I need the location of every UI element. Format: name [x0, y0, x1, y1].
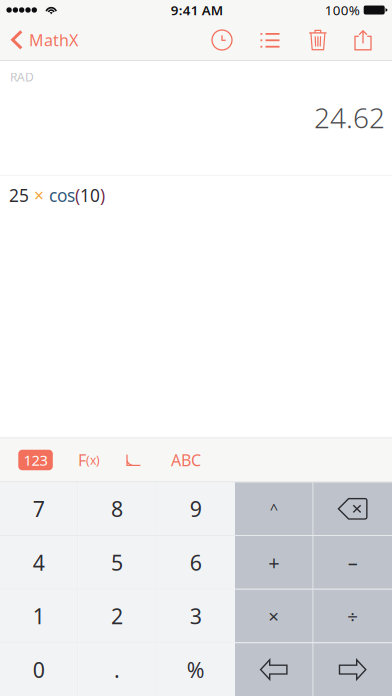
staticText: 8: [111, 495, 123, 523]
staticText: 4: [33, 548, 45, 576]
staticText: 5: [111, 548, 123, 576]
button[interactable]: Delete: [313, 482, 392, 535]
staticText: cos: [49, 184, 75, 207]
button[interactable]: 7: [0, 482, 77, 535]
button[interactable]: 2: [78, 590, 156, 642]
staticText: MathX: [29, 29, 78, 51]
staticText: 9:41 AM: [171, 1, 223, 19]
staticText: ^: [270, 499, 278, 519]
staticText: 0: [33, 655, 45, 684]
staticText: 2: [111, 602, 123, 630]
staticText: 3: [190, 602, 202, 630]
staticText: F: [78, 449, 86, 471]
staticText: .: [114, 655, 120, 684]
button[interactable]: Geometry: [126, 438, 171, 481]
button[interactable]: Clear: [303, 20, 333, 60]
button[interactable]: ^: [235, 482, 312, 535]
staticText: RAD: [10, 69, 34, 85]
staticText: 123: [24, 450, 48, 470]
staticText: ×: [29, 184, 49, 207]
staticText: 7: [33, 495, 45, 523]
button[interactable]: 1: [0, 590, 77, 642]
button[interactable]: Move left: [235, 643, 312, 696]
staticText: 100%: [325, 1, 360, 19]
staticText: 9: [190, 495, 202, 523]
button[interactable]: +: [235, 536, 312, 589]
button[interactable]: Share: [348, 20, 378, 60]
staticText: 6: [190, 548, 202, 576]
button[interactable]: 9: [157, 482, 235, 535]
button[interactable]: 4: [0, 536, 77, 589]
staticText: +: [268, 549, 279, 576]
button[interactable]: MathX: [0, 20, 88, 60]
button[interactable]: ÷: [313, 590, 392, 642]
button[interactable]: %: [157, 643, 235, 696]
button[interactable]: Variables: [255, 20, 285, 60]
button[interactable]: ×: [235, 590, 312, 642]
staticText: 24.62: [314, 99, 385, 136]
button[interactable]: .: [78, 643, 156, 696]
button[interactable]: History: [207, 20, 237, 60]
staticText: 10: [80, 184, 100, 207]
button[interactable]: 0: [0, 643, 77, 696]
staticText: (x): [86, 452, 100, 468]
staticText: –: [348, 549, 358, 576]
button[interactable]: ABC: [171, 438, 201, 481]
button[interactable]: 123: [0, 438, 78, 481]
staticText: (: [75, 184, 80, 207]
staticText: ): [100, 184, 105, 207]
button[interactable]: 8: [78, 482, 156, 535]
staticText: %: [187, 655, 205, 684]
button[interactable]: Move right: [313, 643, 392, 696]
staticText: ×: [268, 604, 279, 628]
button[interactable]: F: [78, 438, 126, 481]
staticText: 25: [9, 184, 29, 207]
staticText: 1: [33, 602, 45, 630]
button[interactable]: –: [313, 536, 392, 589]
button[interactable]: 5: [78, 536, 156, 589]
button[interactable]: 6: [157, 536, 235, 589]
button[interactable]: 3: [157, 590, 235, 642]
staticText: ÷: [347, 604, 358, 628]
staticText: ABC: [171, 449, 201, 471]
